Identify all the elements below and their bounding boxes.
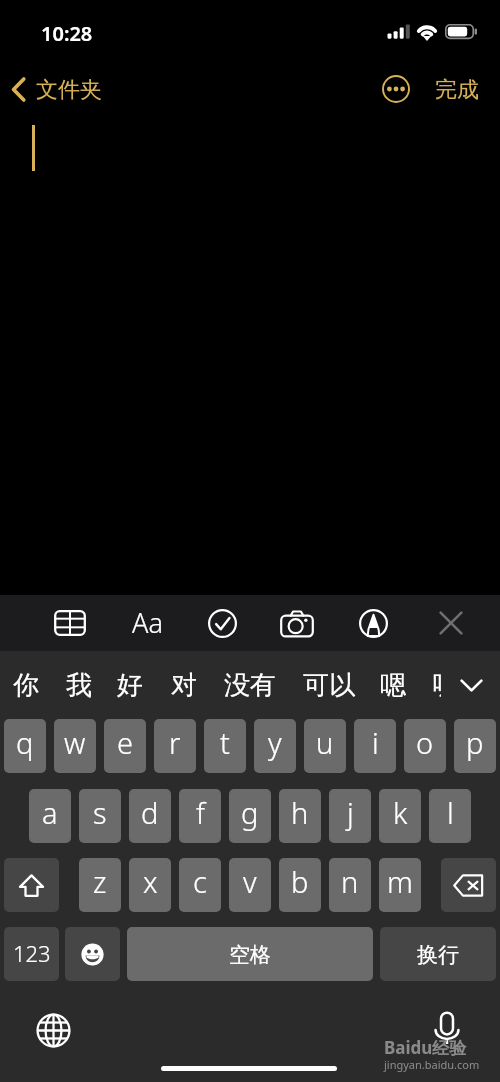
button[interactable]: o (404, 719, 446, 773)
staticText: 可以 (303, 669, 355, 702)
staticText: 我 (66, 669, 92, 702)
button[interactable]: e (104, 719, 146, 773)
button[interactable]: x (129, 858, 171, 912)
button[interactable]: s (79, 789, 121, 843)
staticText: t (220, 723, 230, 762)
button[interactable]: 文件夹 (8, 67, 110, 111)
button[interactable]: d (129, 789, 171, 843)
button[interactable]: More (377, 70, 414, 107)
button[interactable]: Text formatting (126, 603, 168, 643)
staticText: Aa (132, 604, 163, 641)
staticText: m (387, 862, 413, 901)
staticText: v (243, 862, 257, 901)
staticText: b (291, 862, 309, 901)
button[interactable]: 我 (58, 658, 100, 712)
staticText: 对 (171, 669, 197, 702)
staticText: f (196, 793, 205, 832)
staticText: y (268, 723, 282, 762)
button[interactable]: j (329, 789, 371, 843)
button[interactable]: v (229, 858, 271, 912)
staticText: l (447, 793, 454, 832)
button[interactable]: 空格 (127, 927, 373, 981)
button[interactable]: m (379, 858, 421, 912)
button[interactable]: Emoji (65, 927, 120, 981)
staticText: 嗯 (380, 669, 406, 702)
button[interactable]: Markup (353, 603, 393, 643)
staticText: g (241, 793, 259, 832)
staticText: 好 (117, 669, 143, 702)
button[interactable]: i (354, 719, 396, 773)
staticText: o (416, 723, 434, 762)
button[interactable]: 没有 (216, 658, 284, 712)
button[interactable]: k (379, 789, 421, 843)
staticText: p (466, 723, 484, 762)
button[interactable]: 换行 (380, 927, 496, 981)
button[interactable]: 对 (163, 658, 205, 712)
button[interactable]: f (179, 789, 221, 843)
staticText: i (372, 723, 379, 762)
button[interactable]: l (429, 789, 471, 843)
button[interactable]: Checklist (202, 603, 242, 643)
staticText: j (347, 793, 354, 832)
button[interactable]: 嗯 (372, 658, 414, 712)
staticText: a (42, 793, 58, 832)
staticText: k (393, 793, 408, 832)
button[interactable]: a (29, 789, 71, 843)
staticText: 123 (13, 938, 51, 968)
button[interactable]: p (454, 719, 496, 773)
button[interactable]: c (179, 858, 221, 912)
button[interactable]: Shift (4, 858, 59, 912)
button[interactable]: u (304, 719, 346, 773)
button[interactable]: b (279, 858, 321, 912)
button[interactable]: q (4, 719, 46, 773)
staticText: 10:28 (41, 20, 93, 47)
button[interactable]: 你 (5, 658, 47, 712)
staticText: z (93, 862, 107, 901)
staticText: 换行 (417, 942, 459, 968)
button[interactable]: h (279, 789, 321, 843)
staticText: Baidu经验 (384, 1036, 467, 1059)
button[interactable]: Camera (277, 603, 317, 643)
staticText: 你 (13, 669, 39, 702)
button[interactable]: 可以 (295, 658, 363, 712)
staticText: d (141, 793, 159, 832)
button[interactable]: r (154, 719, 196, 773)
staticText: h (291, 793, 309, 832)
button[interactable]: More candidates (452, 658, 490, 712)
button[interactable]: Next keyboard (33, 1010, 74, 1051)
staticText: e (117, 723, 134, 762)
staticText: r (169, 723, 181, 762)
staticText: 文件夹 (36, 76, 102, 104)
staticText: 呃 (432, 669, 441, 702)
button[interactable]: y (254, 719, 296, 773)
staticText: 完成 (435, 76, 479, 104)
button[interactable]: Backspace (441, 858, 496, 912)
staticText: 空格 (229, 942, 271, 968)
button[interactable]: 123 (4, 927, 59, 981)
button[interactable]: Hide keyboard (431, 603, 471, 643)
button[interactable]: z (79, 858, 121, 912)
staticText: x (143, 862, 158, 901)
staticText: s (93, 793, 107, 832)
staticText: w (64, 723, 86, 762)
staticText: n (341, 862, 359, 901)
staticText: jingyan.baidu.com (384, 1057, 480, 1072)
button[interactable]: Insert table (50, 603, 90, 643)
button[interactable]: 完成 (425, 67, 489, 111)
staticText: q (16, 723, 34, 762)
button[interactable]: w (54, 719, 96, 773)
button[interactable]: g (229, 789, 271, 843)
button[interactable]: 好 (109, 658, 151, 712)
button[interactable]: n (329, 858, 371, 912)
button[interactable]: Dictation (427, 1008, 467, 1048)
button[interactable]: t (204, 719, 246, 773)
staticText: 没有 (224, 669, 276, 702)
staticText: c (193, 862, 207, 901)
staticText: u (316, 723, 334, 762)
